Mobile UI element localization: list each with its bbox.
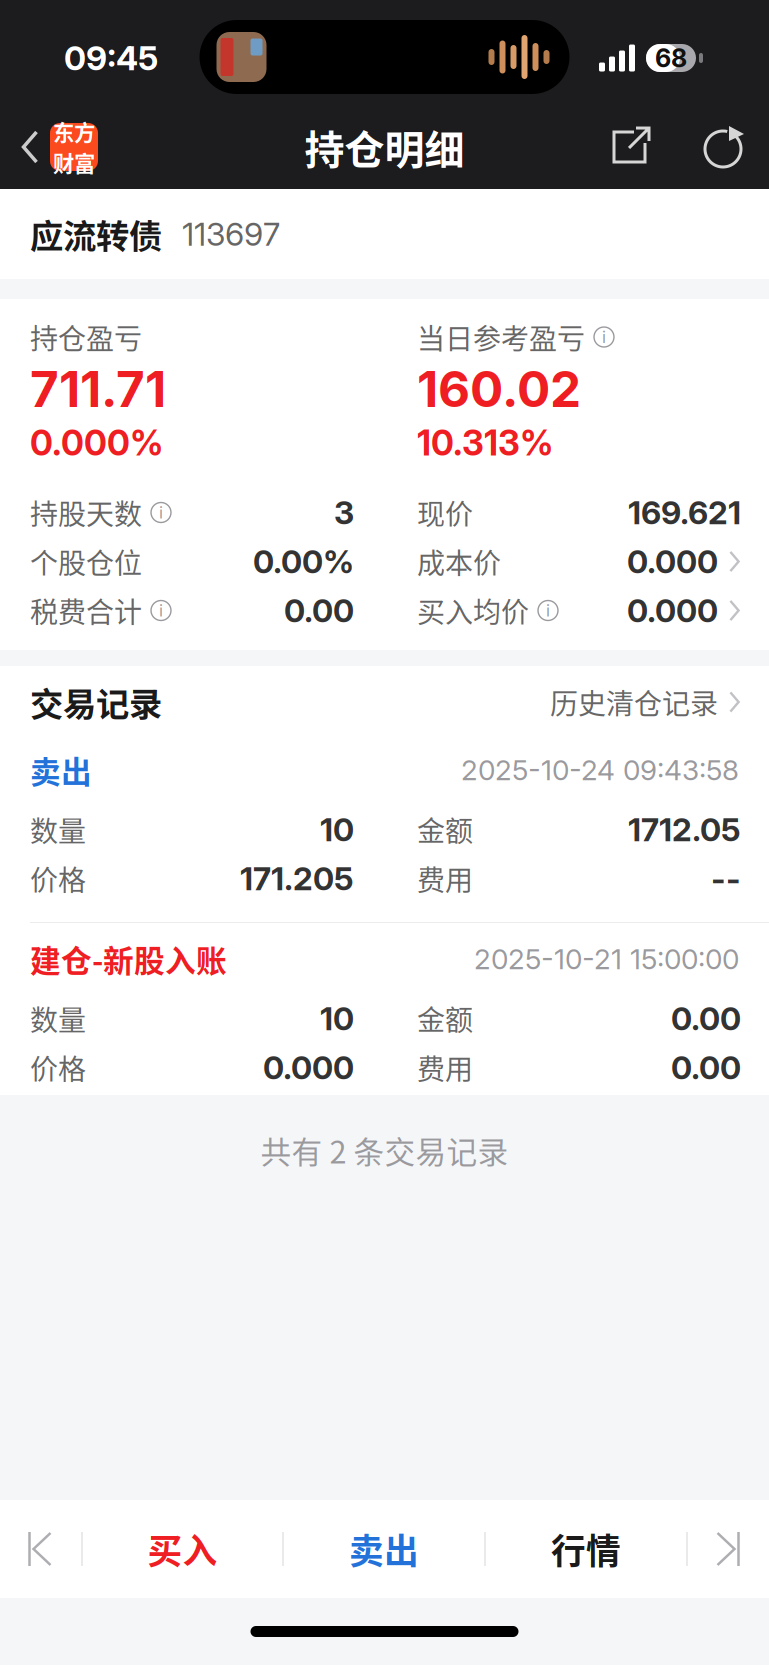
staticText: 169.621 bbox=[628, 493, 741, 532]
staticText: 3 bbox=[334, 493, 354, 532]
staticText: 费用 bbox=[417, 1047, 473, 1088]
staticText: 0.00 bbox=[284, 591, 354, 630]
staticText: 09:45 bbox=[64, 38, 158, 78]
staticText: 0.00 bbox=[671, 999, 741, 1038]
staticText: 2025-10-24 09:43:58 bbox=[461, 753, 739, 787]
staticText: 2025-10-21 15:00:00 bbox=[474, 942, 739, 976]
staticText: 卖出 bbox=[30, 748, 92, 792]
staticText: 711.71 bbox=[30, 359, 166, 419]
staticText: 1712.05 bbox=[628, 810, 741, 849]
button[interactable]: 买入 bbox=[82, 1500, 282, 1598]
button[interactable]: 下一个 bbox=[687, 1500, 769, 1598]
staticText: 成本价 bbox=[417, 541, 501, 582]
staticText: 10 bbox=[320, 810, 354, 849]
staticText: 交易记录 bbox=[30, 678, 162, 726]
staticText: 共有 2 条交易记录 bbox=[260, 1128, 508, 1172]
button[interactable]: 历史清仓记录 bbox=[550, 666, 741, 738]
staticText: 现价 bbox=[417, 492, 473, 533]
staticText: 历史清仓记录 bbox=[550, 682, 718, 722]
staticText: 数量 bbox=[30, 998, 86, 1039]
staticText: i bbox=[159, 502, 163, 522]
staticText: 行情 bbox=[551, 1524, 621, 1574]
staticText: 10.313% bbox=[417, 422, 553, 464]
staticText: 0.00 bbox=[671, 1048, 741, 1087]
button[interactable]: 返回 bbox=[0, 105, 98, 189]
staticText: 东方 bbox=[53, 116, 95, 147]
staticText: 68 bbox=[655, 43, 687, 73]
staticText: 160.02 bbox=[417, 359, 581, 419]
staticText: 卖出 bbox=[349, 1524, 419, 1574]
staticText: 买入均价 bbox=[417, 590, 529, 631]
staticText: 金额 bbox=[417, 998, 473, 1039]
staticText: 113697 bbox=[182, 215, 280, 253]
staticText: 持仓明细 bbox=[304, 118, 464, 176]
staticText: 金额 bbox=[417, 809, 473, 850]
staticText: 0.000 bbox=[627, 591, 718, 630]
staticText: 171.205 bbox=[240, 859, 354, 898]
staticText: 财富 bbox=[53, 147, 95, 178]
staticText: 0.00% bbox=[253, 542, 354, 581]
staticText: -- bbox=[711, 859, 741, 898]
staticText: 持股天数 bbox=[30, 492, 142, 533]
staticText: 价格 bbox=[30, 1047, 86, 1088]
button[interactable]: 刷新 bbox=[689, 105, 757, 189]
staticText: i bbox=[602, 327, 606, 347]
staticText: 费用 bbox=[417, 858, 473, 899]
button[interactable]: 分享 bbox=[575, 105, 689, 189]
staticText: 0.000% bbox=[30, 422, 163, 464]
staticText: 数量 bbox=[30, 809, 86, 850]
staticText: 买入 bbox=[147, 1524, 217, 1574]
staticText: 个股仓位 bbox=[30, 541, 142, 582]
staticText: 建仓-新股入账 bbox=[30, 937, 227, 981]
staticText: 持仓盈亏 bbox=[30, 317, 142, 357]
staticText: i bbox=[159, 600, 163, 620]
staticText: 0.000 bbox=[263, 1048, 354, 1087]
button[interactable]: 上一个 bbox=[0, 1500, 81, 1598]
button[interactable]: 卖出 bbox=[283, 1500, 484, 1598]
staticText: 10 bbox=[320, 999, 354, 1038]
staticText: 当日参考盈亏 bbox=[417, 317, 585, 357]
staticText: 应流转债 bbox=[30, 210, 162, 258]
button[interactable]: 行情 bbox=[485, 1500, 686, 1598]
staticText: 0.000 bbox=[627, 542, 718, 581]
staticText: i bbox=[546, 600, 550, 620]
staticText: 税费合计 bbox=[30, 590, 142, 631]
staticText: 价格 bbox=[30, 858, 86, 899]
